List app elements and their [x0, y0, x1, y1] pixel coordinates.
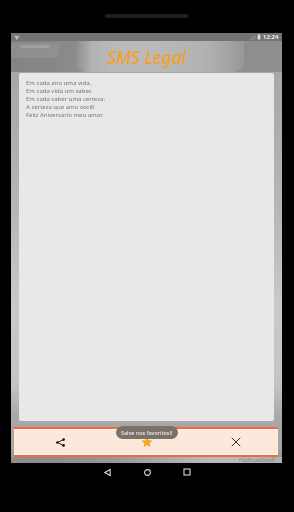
staticText: Salve nos favoritos!! — [121, 429, 173, 436]
button[interactable]: Recents — [167, 463, 207, 481]
staticText: PabBoaesDev® — [239, 457, 276, 463]
staticText: Feliz Aniversário meu amor. — [26, 111, 104, 119]
staticText: Em cada ano uma vida, — [26, 79, 92, 87]
button[interactable]: Compartilhar — [47, 427, 73, 457]
button[interactable]: Favoritar — [140, 435, 154, 449]
staticText: Em cada saber uma certeza, — [26, 95, 105, 103]
staticText: SMS Legal — [107, 45, 186, 69]
staticText: Em cada vida um saber, — [26, 87, 92, 95]
button[interactable]: Home — [127, 463, 167, 481]
button[interactable]: Fechar — [223, 427, 249, 457]
staticText: A certeza que amo você! — [26, 103, 95, 111]
staticText: 12:24 — [263, 33, 279, 41]
button[interactable]: Back — [87, 463, 127, 481]
